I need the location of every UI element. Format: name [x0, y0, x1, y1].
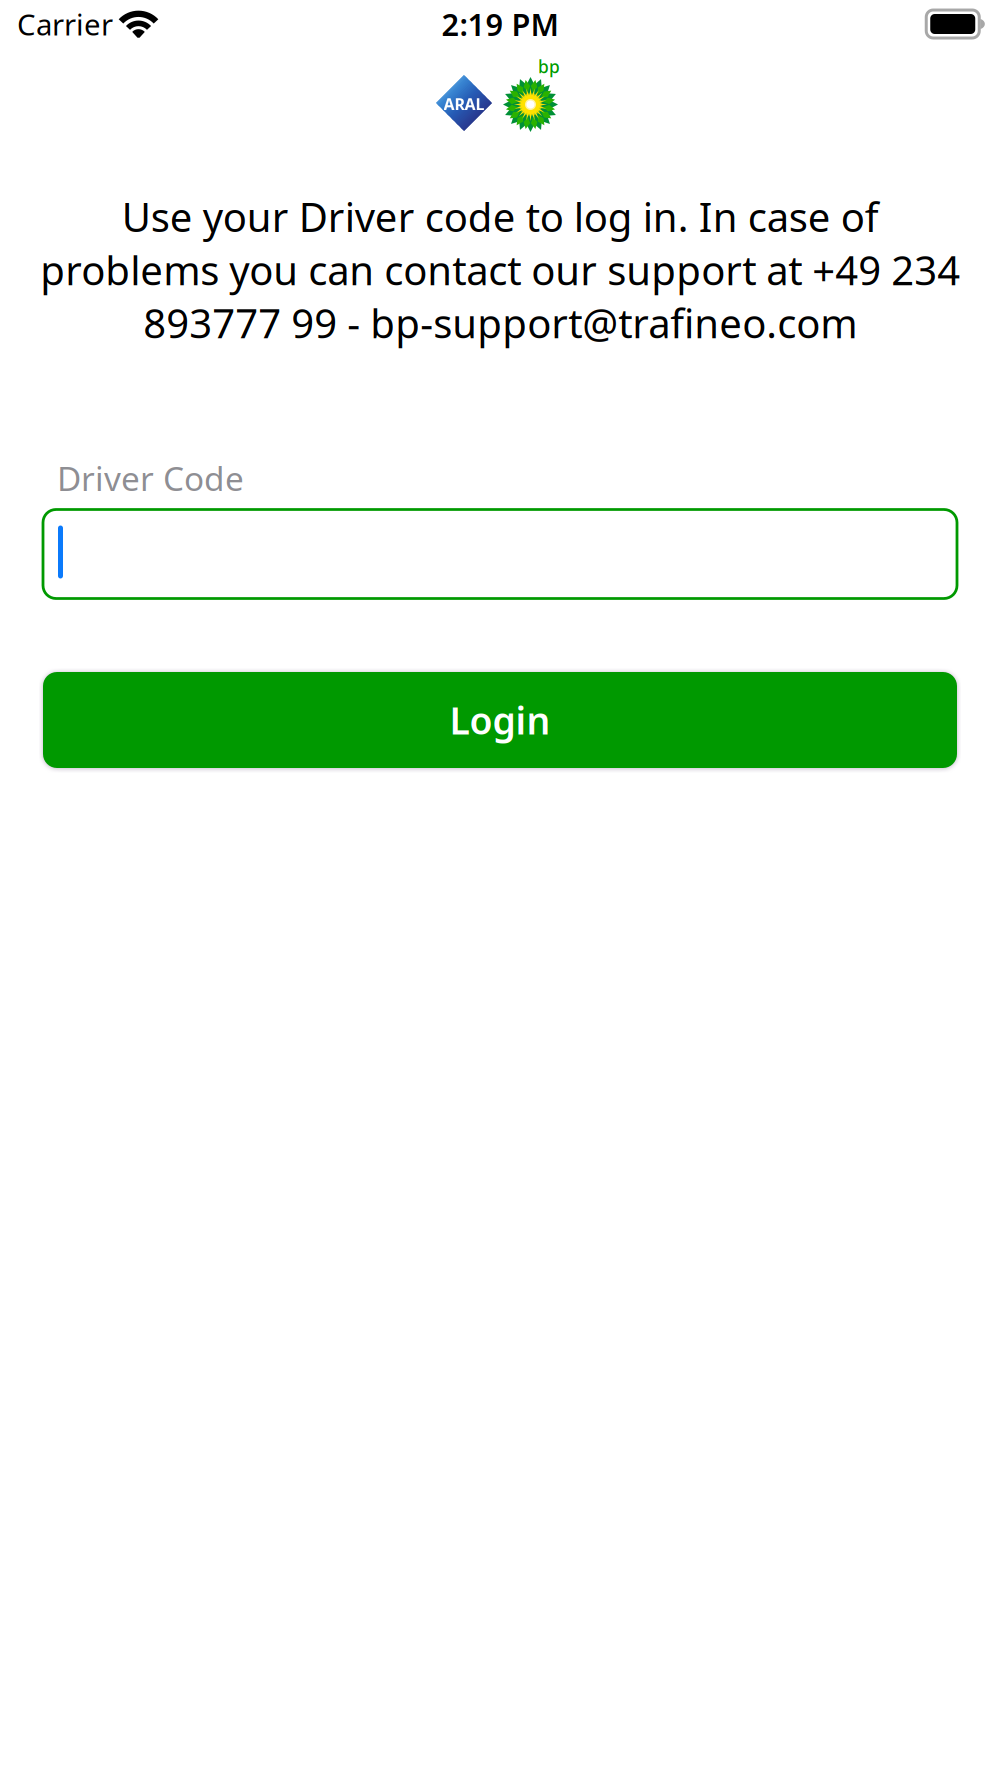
staticText: bp [538, 55, 560, 78]
staticText: Use your Driver code to log in. In case … [40, 190, 960, 349]
button[interactable]: Login [43, 672, 957, 768]
staticText: Carrier [17, 4, 113, 43]
staticText: Driver Code [57, 456, 244, 500]
staticText: 2:19 PM [441, 4, 558, 44]
button[interactable]: Driver Code [43, 509, 957, 599]
staticText: Login [449, 695, 550, 745]
staticText: ARAL [443, 93, 484, 115]
